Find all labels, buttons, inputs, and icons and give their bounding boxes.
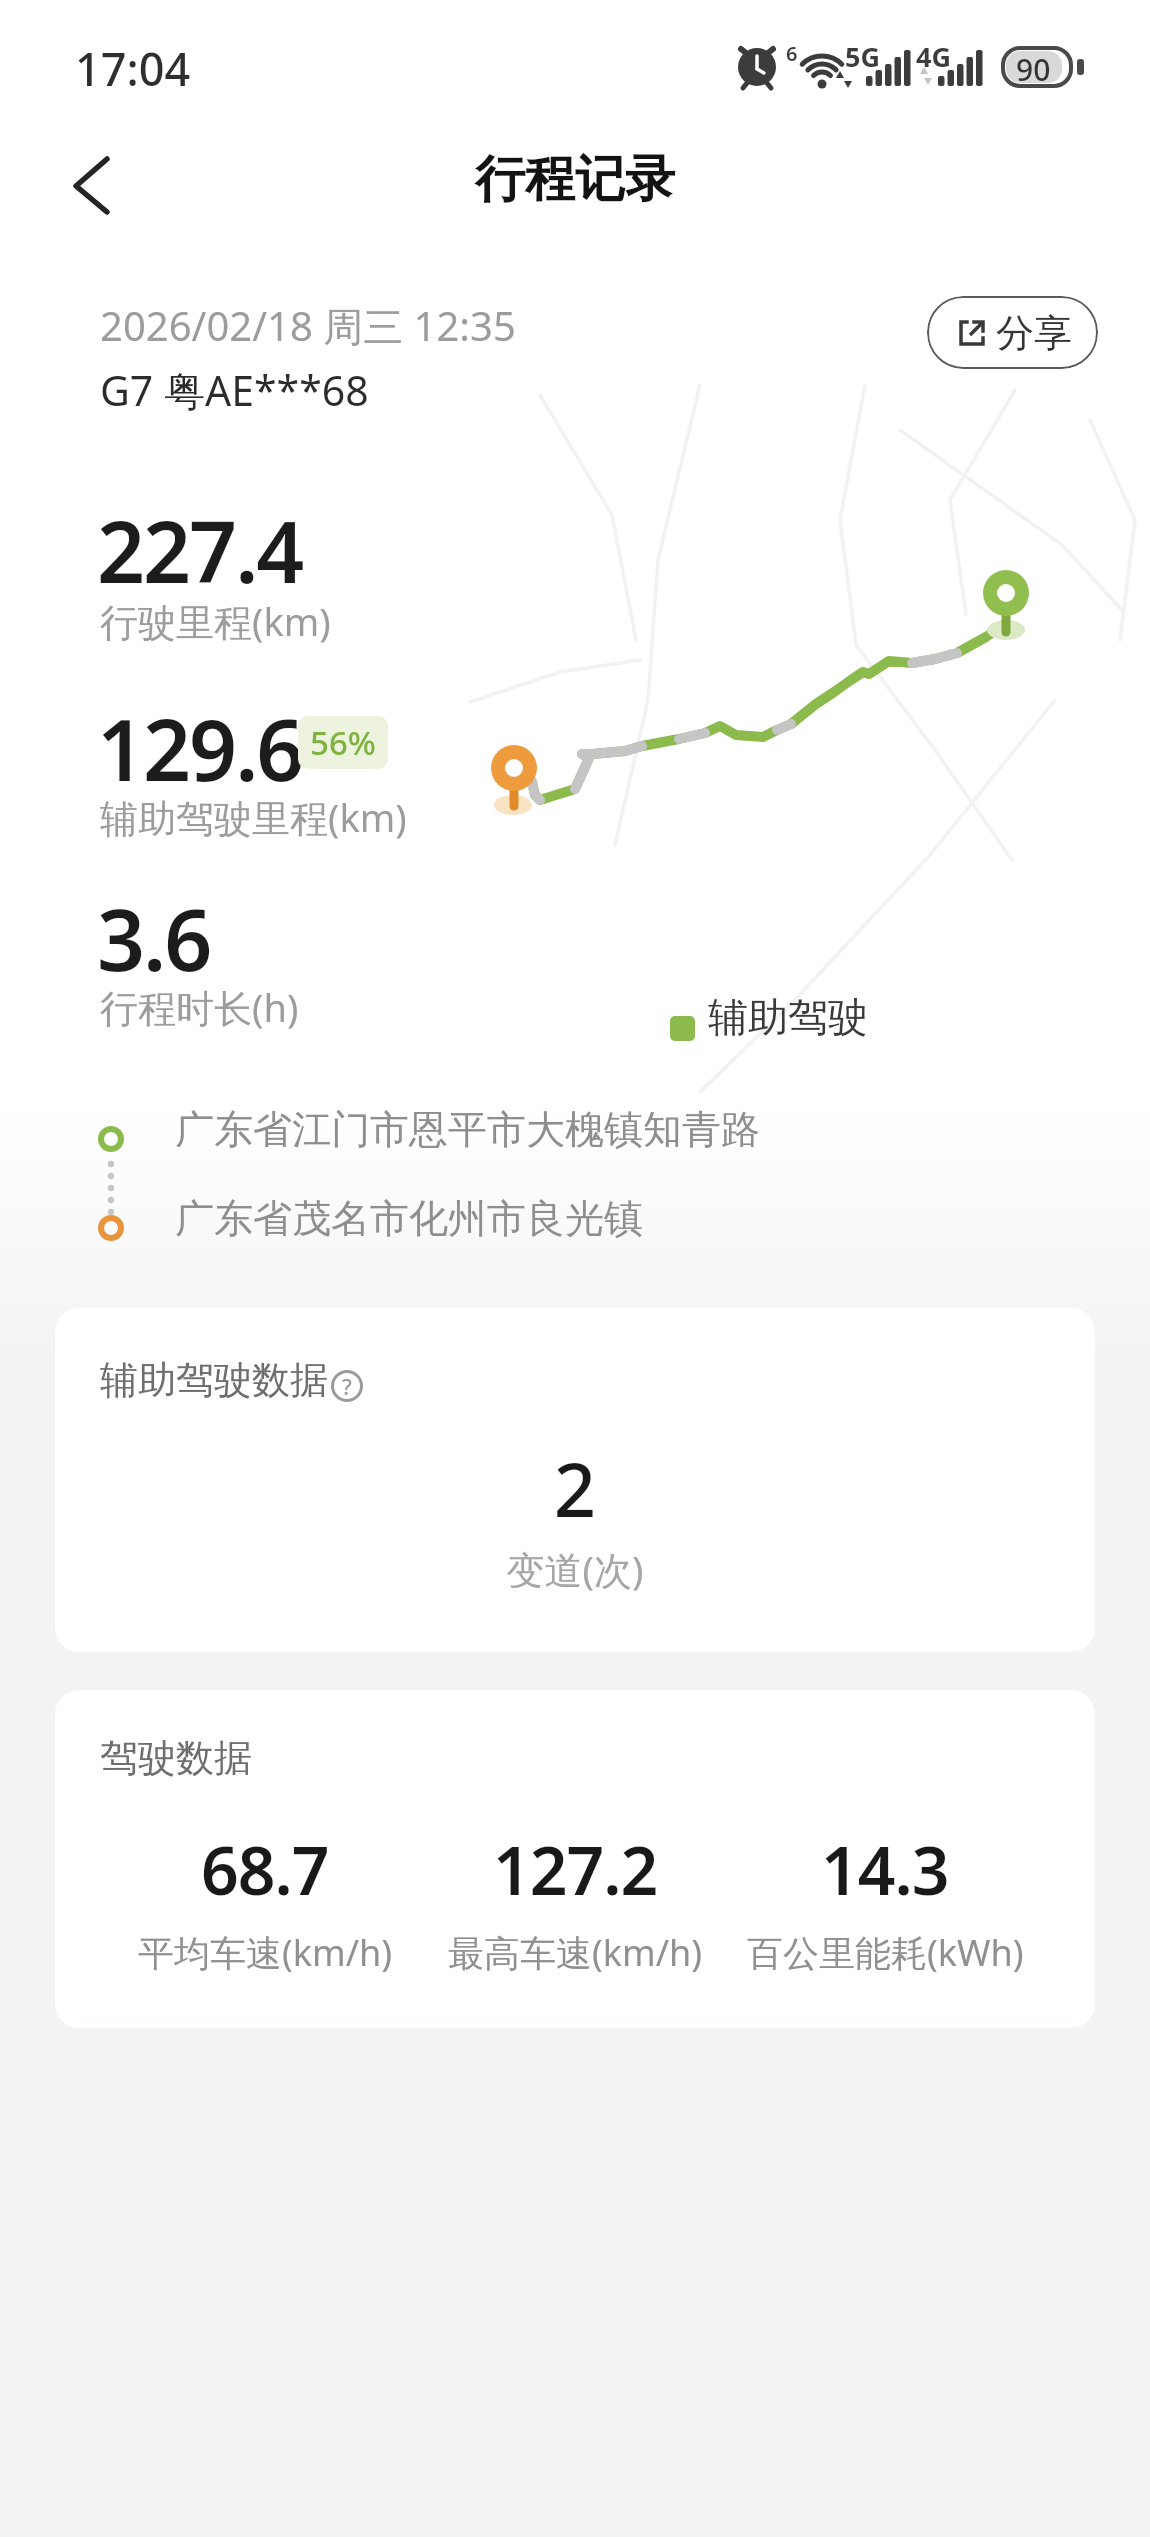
staticText: 4G xyxy=(916,38,951,75)
staticText: ? xyxy=(342,1371,352,1401)
staticText: 广东省江门市恩平市大槐镇知青路 xyxy=(175,1105,760,1154)
staticText: 驾驶数据 xyxy=(100,1734,252,1782)
staticText: 56% xyxy=(310,720,376,765)
staticText: 6 xyxy=(786,40,798,67)
button[interactable] xyxy=(55,140,125,230)
staticText: 行驶里程(km) xyxy=(100,595,331,647)
button[interactable]: 分享 xyxy=(927,296,1098,369)
staticText: 广东省茂名市化州市良光镇 xyxy=(175,1194,643,1243)
staticText: 百公里能耗(kWh) xyxy=(747,1928,1024,1977)
staticText: 辅助驾驶 xyxy=(708,992,868,1042)
staticText: 行程记录 xyxy=(0,148,1150,211)
staticText: 平均车速(km/h) xyxy=(138,1928,393,1977)
staticText: 最高车速(km/h) xyxy=(448,1928,703,1977)
staticText: G7 粤AE***68 xyxy=(100,362,369,418)
staticText: 129.6 xyxy=(97,691,303,805)
staticText: 2 xyxy=(55,1438,1095,1539)
staticText: 变道(次) xyxy=(55,1543,1095,1595)
staticText: 227.4 xyxy=(97,493,303,607)
staticText: 68.7 xyxy=(201,1824,329,1914)
staticText: 行程时长(h) xyxy=(100,981,299,1033)
staticText: 辅助驾驶数据 xyxy=(100,1356,328,1404)
staticText: 127.2 xyxy=(493,1824,658,1914)
staticText: 14.3 xyxy=(821,1824,949,1914)
staticText: 3.6 xyxy=(97,881,211,995)
staticText: 90 xyxy=(1016,49,1051,90)
staticText: 5G xyxy=(845,38,880,75)
staticText: 17:04 xyxy=(75,38,191,99)
staticText: 辅助驾驶里程(km) xyxy=(100,791,407,843)
staticText: 分享 xyxy=(996,309,1072,357)
staticText: 2026/02/18 周三 12:35 xyxy=(100,298,516,353)
